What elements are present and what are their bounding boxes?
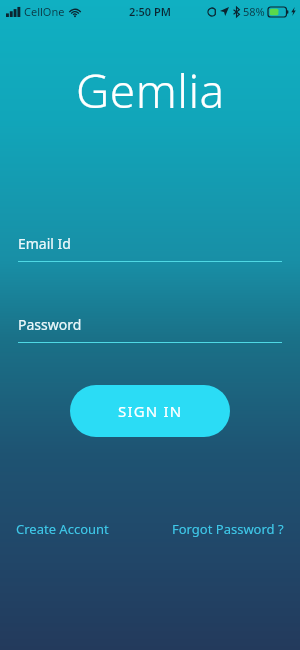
staticText: Forgot Password ? (172, 520, 284, 538)
staticText: Create Account (16, 520, 109, 538)
button[interactable]: Create Account (16, 520, 109, 538)
staticText: 58% (243, 4, 265, 19)
button[interactable]: Forgot Password ? (172, 520, 284, 538)
button[interactable]: Password (18, 315, 282, 333)
staticText: Gemlia (76, 59, 225, 122)
staticText: 2:50 PM (129, 4, 171, 19)
button[interactable]: SIGN IN (70, 385, 230, 437)
staticText: CellOne (24, 4, 65, 19)
staticText: SIGN IN (118, 401, 183, 421)
staticText: Email Id (18, 234, 71, 252)
button[interactable]: Email Id (18, 234, 282, 252)
staticText: Password (18, 315, 82, 333)
